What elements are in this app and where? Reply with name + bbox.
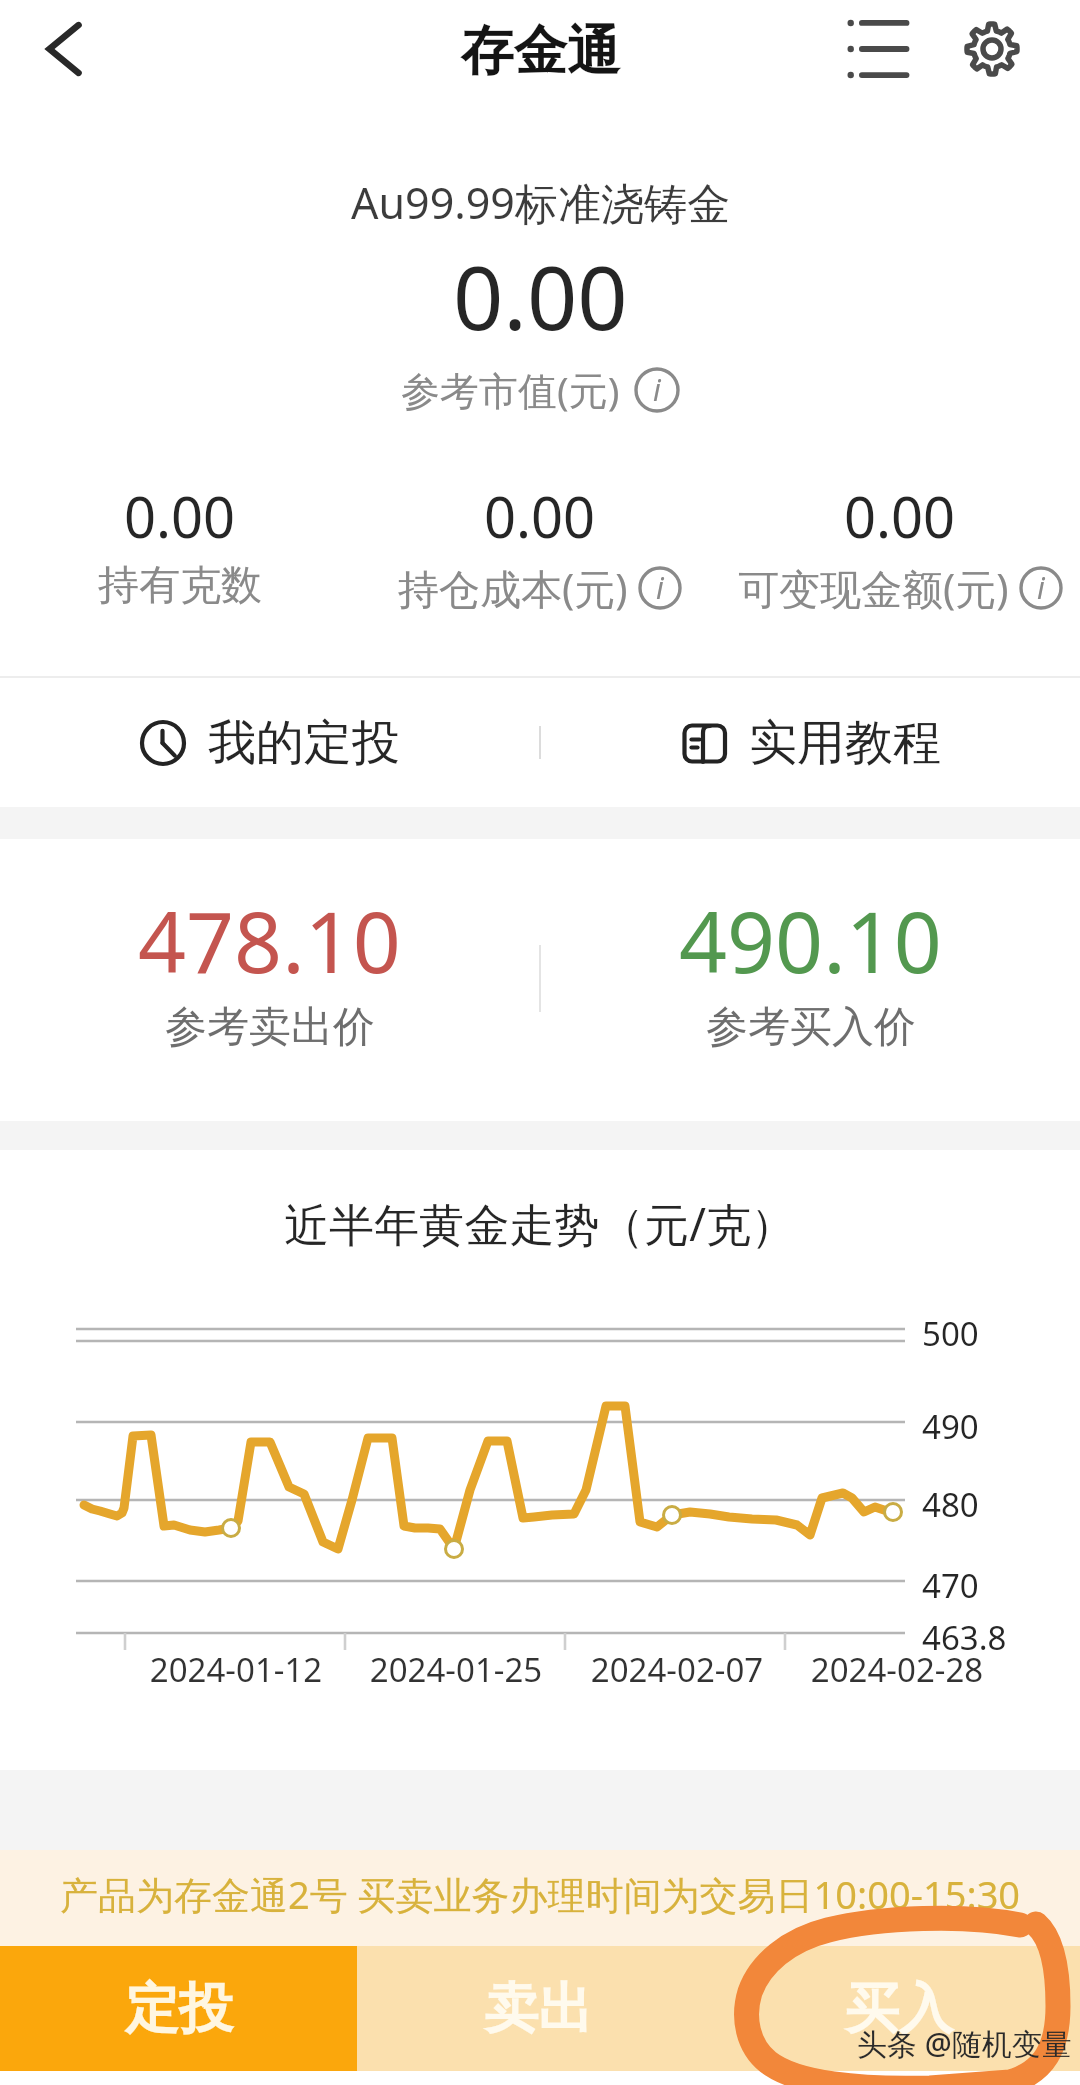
staticText: Au99.99标准浇铸金 [351,173,730,232]
staticText: 产品为存金通2号 买卖业务办理时间为交易日10:00-15:30 [60,1868,1021,1920]
staticText: 500 [922,1311,979,1356]
staticText: 持有克数 [98,560,262,612]
staticText: 可变现金额(元) [738,560,1009,616]
staticText: 参考市值(元) [401,363,620,416]
button[interactable]: Settings [961,18,1023,80]
button[interactable]: Reference market value info [401,363,680,416]
staticText: 2024-02-07 [567,1647,787,1692]
button[interactable]: Transaction list [847,18,909,80]
button[interactable]: 定投 [0,1946,357,2071]
staticText: 0.00 [124,478,236,554]
staticText: 近半年黄金走势（元/克） [0,1193,1080,1254]
staticText: 0.00 [453,236,628,356]
button[interactable]: 我的定投 [0,678,539,807]
staticText: 0.00 [844,478,956,554]
staticText: 463.8 [922,1615,1007,1660]
staticText: 参考买入价 [706,1001,916,1054]
staticText: 卖出 [484,1975,592,2043]
staticText: i [653,369,661,410]
button[interactable]: 490.10 [541,895,1080,1066]
staticText: 买入 [845,1975,953,2043]
staticText: 存金通 [461,18,620,85]
staticText: 2024-02-28 [787,1647,1007,1692]
staticText: 头条 @随机变量 [857,2023,1072,2064]
button[interactable]: 0.00 [720,478,1080,616]
staticText: 480 [922,1482,979,1527]
staticText: 参考卖出价 [165,1001,375,1054]
staticText: 定投 [125,1975,233,2043]
staticText: 490.10 [679,883,942,997]
staticText: 2024-01-12 [126,1647,346,1692]
staticText: 2024-01-25 [346,1647,566,1692]
staticText: 实用教程 [749,713,941,773]
button[interactable]: Back [38,23,90,75]
button[interactable]: 0.00 [360,478,720,616]
staticText: i [1037,567,1045,608]
button[interactable]: 实用教程 [541,678,1080,807]
button[interactable]: 卖出 [357,1946,718,2071]
staticText: 我的定投 [208,713,400,773]
button[interactable]: 478.10 [0,895,539,1066]
staticText: 470 [922,1563,979,1608]
staticText: 持仓成本(元) [398,560,628,616]
staticText: i [656,567,664,608]
staticText: 0.00 [484,478,596,554]
button[interactable]: 买入 [718,1946,1080,2071]
staticText: 490 [922,1404,979,1449]
button[interactable]: 0.00 [0,478,360,612]
staticText: 478.10 [138,883,401,997]
